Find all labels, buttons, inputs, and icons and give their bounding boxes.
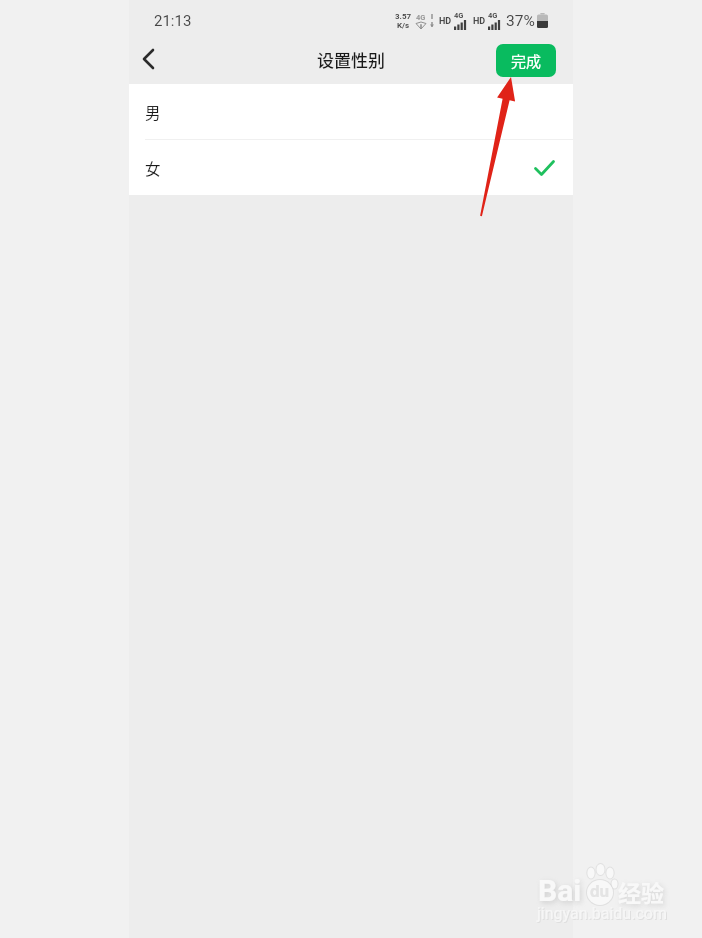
staticText: 4G <box>454 11 464 20</box>
staticText: 男 <box>145 101 161 123</box>
staticText: K/s <box>397 21 410 30</box>
staticText: 经验 <box>618 875 664 908</box>
button[interactable]: 男 <box>129 84 573 139</box>
staticText: 4G <box>488 11 498 20</box>
staticText: Bai <box>538 873 582 908</box>
staticText: du <box>590 881 610 901</box>
staticText: HD <box>473 16 486 27</box>
staticText: 女 <box>145 157 161 179</box>
staticText: HD <box>439 16 452 27</box>
button[interactable]: 女 <box>129 140 573 195</box>
button[interactable] <box>135 46 161 72</box>
staticText: 设置性别 <box>317 47 385 72</box>
staticText: 完成 <box>511 50 542 72</box>
staticText: 4G <box>416 13 426 22</box>
button[interactable]: 完成 <box>496 44 556 77</box>
staticText: 21:13 <box>154 12 192 30</box>
staticText: jingyan.baidu.com <box>537 904 667 923</box>
staticText: 3.57 <box>395 12 412 21</box>
staticText: 37% <box>506 12 535 30</box>
staticText: jingyan.baidu.com <box>538 905 668 924</box>
